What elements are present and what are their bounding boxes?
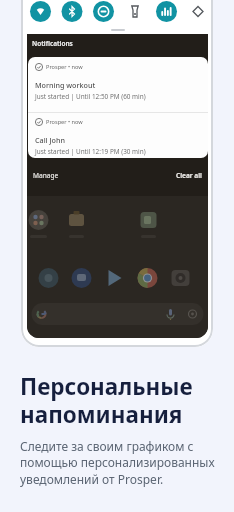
- staticText: Персональные напоминания: [20, 371, 193, 429]
- staticText: Следите за своим графиком с помощью перс…: [20, 438, 215, 488]
- staticText: Prosper • now: [46, 63, 83, 71]
- staticText: Notifications: [32, 39, 73, 48]
- staticText: Call John: [35, 135, 65, 145]
- staticText: Just started | Until 12:19 PM (30 min): [35, 147, 146, 156]
- staticText: Prosper • now: [46, 118, 83, 126]
- staticText: Morning workout: [35, 80, 96, 90]
- button[interactable]: Prosper • now: [28, 57, 208, 112]
- button[interactable]: Prosper • now: [28, 112, 208, 158]
- button[interactable]: Manage: [33, 171, 59, 180]
- staticText: Just started | Until 12:50 PM (60 min): [35, 92, 146, 101]
- button[interactable]: Clear all: [176, 171, 202, 180]
